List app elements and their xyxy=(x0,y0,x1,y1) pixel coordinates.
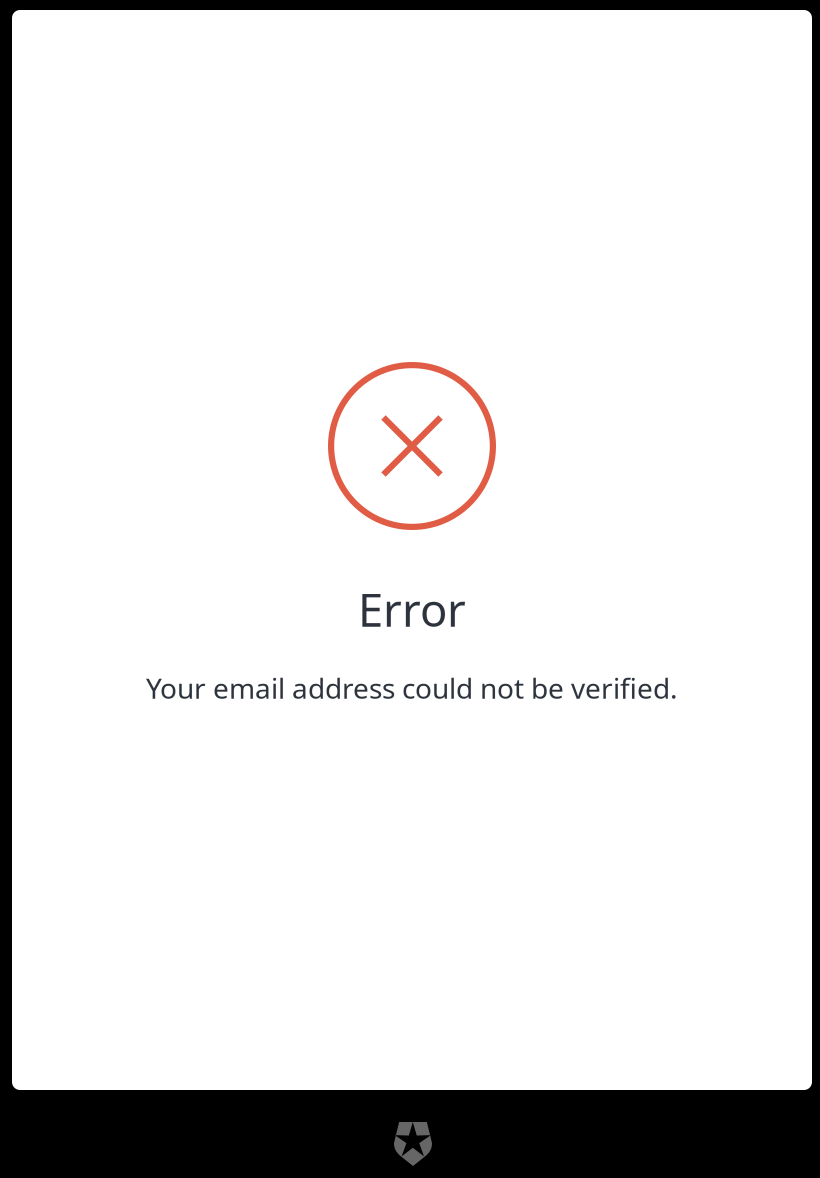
staticText: Your email address could not be verified… xyxy=(146,669,678,706)
staticText: Error xyxy=(358,579,466,639)
button[interactable]: Auth0 xyxy=(394,1122,432,1166)
